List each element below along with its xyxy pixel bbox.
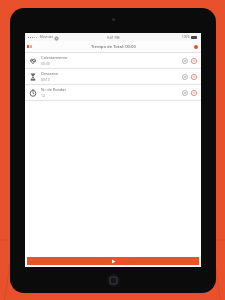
staticText: Calentamiento — [41, 55, 68, 60]
button[interactable]: Home — [107, 274, 120, 287]
button[interactable]: Delete — [191, 90, 197, 96]
button[interactable]: Descanso — [25, 69, 201, 84]
staticText: 12 — [41, 93, 45, 98]
button[interactable]: Add — [194, 45, 198, 49]
staticText: 00:10 — [41, 77, 50, 82]
staticText: 00:30 — [41, 61, 50, 66]
button[interactable]: N.º de Rondas — [25, 85, 201, 100]
staticText: Movistar — [40, 35, 53, 39]
button[interactable]: Settings — [182, 58, 188, 64]
button[interactable]: Calentamiento — [25, 53, 201, 68]
button[interactable]: Menu — [27, 45, 32, 48]
button[interactable]: Settings — [182, 90, 188, 96]
button[interactable]: Start — [27, 257, 199, 265]
staticText: 9:41 PM — [107, 35, 120, 39]
button[interactable]: Delete — [191, 58, 197, 64]
staticText: Tiempo de Total: 00:00 — [91, 44, 136, 50]
staticText: Descanso — [41, 71, 59, 76]
button[interactable]: Settings — [182, 74, 188, 80]
button[interactable]: Delete — [191, 74, 197, 80]
staticText: N.º de Rondas — [41, 87, 67, 92]
staticText: 100% — [182, 35, 190, 39]
